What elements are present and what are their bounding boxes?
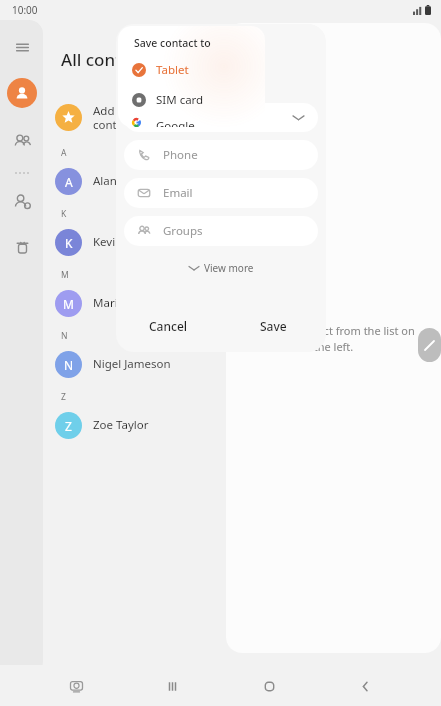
staticText: M [61,269,69,281]
button[interactable]: Add a new contact [43,95,226,139]
staticText: A [61,147,67,159]
staticText: M [63,296,74,312]
staticText: Email [163,185,193,201]
button[interactable]: Z [43,406,226,444]
staticText: Add a new contact [93,103,150,132]
staticText: K [65,235,73,251]
button[interactable]: Email [124,178,318,208]
staticText: Select a contact from the list on the le… [252,323,415,354]
staticText: All contacts [61,48,155,71]
button[interactable]: K [43,223,226,261]
button[interactable]: Menu [7,32,37,62]
button[interactable]: SIM card [118,89,265,111]
staticText: Zoe Taylor [93,417,149,433]
staticText: N [61,330,68,342]
button[interactable]: Screenshot [56,666,96,706]
staticText: 10:00 [12,3,38,17]
button[interactable] [124,103,318,132]
button[interactable]: Save [221,304,326,348]
button[interactable]: View more [116,256,326,280]
staticText: View more [204,261,254,275]
staticText: Groups [163,223,203,239]
button[interactable]: Phone [124,140,318,170]
staticText: Save [260,318,287,334]
button[interactable]: Groups [7,126,37,156]
button[interactable]: N [43,345,226,383]
button[interactable]: Groups [124,216,318,246]
staticText: Z [61,391,66,403]
staticText: K [61,208,67,220]
button[interactable]: Manage contacts [7,186,37,216]
staticText: Save contact to [134,36,211,50]
staticText: Nigel Jameson [93,356,171,372]
staticText: Alan Jones [93,173,150,189]
button[interactable]: Recents [152,666,192,706]
button[interactable]: Edit [418,328,441,362]
staticText: SIM card [156,92,204,108]
staticText: N [64,357,74,373]
staticText: Phone [163,147,198,163]
button[interactable]: Google [118,118,265,127]
staticText: Tablet [156,62,189,78]
button[interactable]: Contacts [7,78,37,108]
staticText: Z [65,418,72,434]
button[interactable]: Trash [7,232,37,262]
staticText: Maria Smith [93,295,159,311]
staticText: Google [156,118,195,127]
button[interactable]: Cancel [116,304,221,348]
button[interactable]: M [43,284,226,322]
button[interactable]: Tablet [118,59,265,81]
staticText: Kevin Smith [93,234,157,250]
staticText: Cancel [149,318,188,334]
staticText: A [65,174,73,190]
staticText: Alan [130,66,160,85]
button[interactable]: Home [249,666,289,706]
button[interactable]: Back [345,666,385,706]
button[interactable]: A [43,162,226,200]
